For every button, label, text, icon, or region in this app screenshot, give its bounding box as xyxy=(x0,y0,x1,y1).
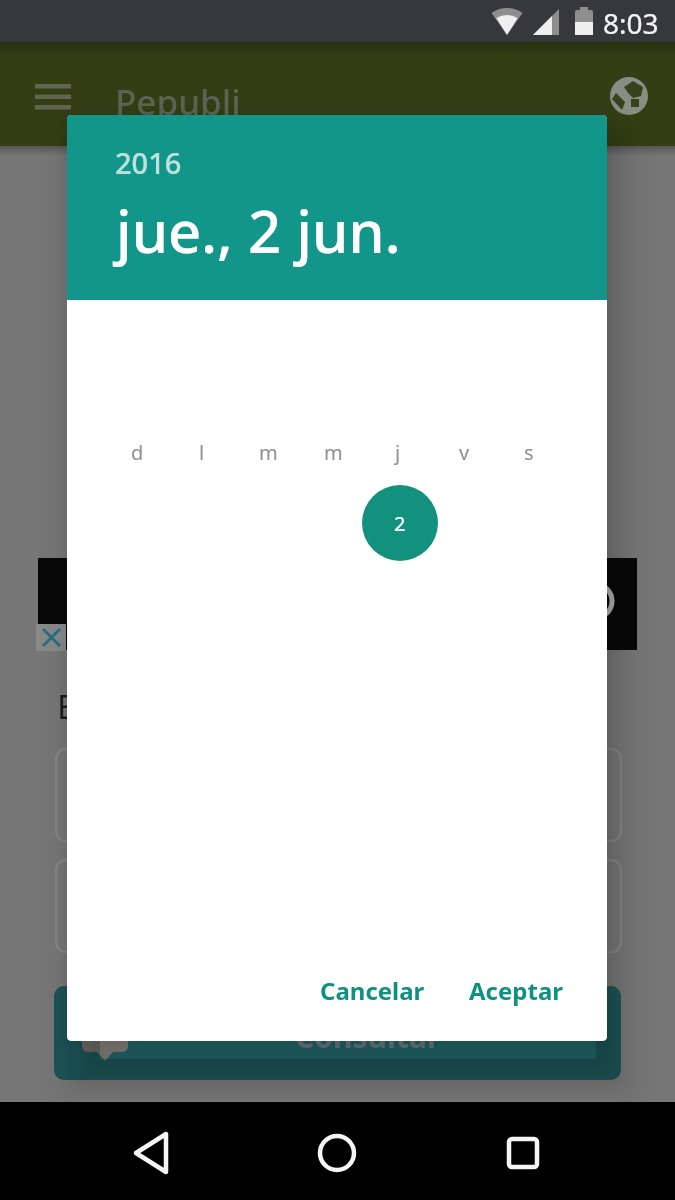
staticText: Cancelar xyxy=(320,974,425,1007)
staticText: Aceptar xyxy=(469,974,564,1007)
button[interactable]: Consultar xyxy=(54,986,621,1080)
staticText: m xyxy=(324,439,343,466)
button[interactable] xyxy=(20,72,86,120)
button[interactable] xyxy=(483,1113,563,1193)
button[interactable] xyxy=(56,749,621,841)
staticText: j xyxy=(395,439,401,466)
staticText: 2016 xyxy=(115,143,182,182)
button[interactable] xyxy=(603,70,655,122)
button[interactable] xyxy=(38,558,637,650)
staticText: jue., 2 jun. xyxy=(116,191,401,270)
staticText: l xyxy=(199,439,205,466)
staticText: m xyxy=(259,439,278,466)
button[interactable]: Cancelar xyxy=(307,963,437,1017)
staticText: Pepubli xyxy=(115,78,241,126)
button[interactable] xyxy=(36,624,66,651)
button[interactable]: 2 xyxy=(362,485,438,561)
button[interactable]: Aceptar xyxy=(453,963,579,1017)
staticText: d xyxy=(131,439,144,466)
button[interactable] xyxy=(297,1113,377,1193)
staticText: s xyxy=(524,439,534,466)
staticText: Consultar xyxy=(295,1016,441,1057)
staticText: v xyxy=(459,439,470,466)
staticText: 8:03 xyxy=(603,4,659,42)
button[interactable] xyxy=(56,860,621,952)
staticText: E xyxy=(57,684,76,729)
staticText: 2 xyxy=(394,510,406,537)
button[interactable] xyxy=(112,1113,192,1193)
